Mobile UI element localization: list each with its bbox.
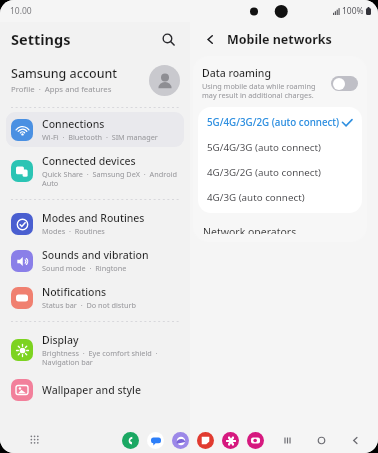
button[interactable]: 4G/3G/2G (auto connect) bbox=[198, 160, 362, 185]
staticText: 10.00 bbox=[10, 5, 32, 17]
button[interactable]: Data roaming toggle bbox=[331, 76, 358, 91]
staticText: Network operators bbox=[203, 225, 297, 234]
button[interactable]: Sounds and vibration bbox=[6, 243, 184, 278]
staticText: Sound mode · Ringtone bbox=[42, 263, 127, 273]
staticText: Notifications bbox=[42, 285, 107, 299]
staticText: 5G/4G/3G (auto connect) bbox=[207, 141, 353, 154]
staticText: Quick Share · Samsung DeX · Android Auto bbox=[42, 169, 178, 188]
button[interactable]: 5G/4G/3G/2G (auto connect) bbox=[198, 110, 362, 135]
button[interactable]: Connected devices bbox=[6, 149, 184, 193]
staticText: Wallpaper and style bbox=[42, 383, 141, 397]
button[interactable]: Display bbox=[6, 328, 184, 372]
button[interactable]: Back bbox=[200, 29, 220, 49]
staticText: Data roaming bbox=[202, 66, 271, 80]
staticText: Samsung account bbox=[11, 65, 118, 82]
staticText: Mobile networks bbox=[227, 31, 332, 48]
button[interactable]: Internet bbox=[172, 432, 189, 449]
staticText: Connections bbox=[42, 117, 105, 131]
button[interactable]: Gallery bbox=[222, 432, 239, 449]
staticText: Connected devices bbox=[42, 154, 136, 168]
staticText: 4G/3G/2G (auto connect) bbox=[207, 166, 353, 179]
staticText: 100% bbox=[342, 5, 364, 17]
button[interactable]: Wallpaper and style bbox=[6, 374, 184, 406]
button[interactable]: Data roaming bbox=[193, 56, 367, 107]
staticText: Status bar · Do not disturb bbox=[42, 300, 137, 310]
staticText: Sounds and vibration bbox=[42, 248, 149, 262]
staticText: Settings bbox=[11, 29, 71, 49]
staticText: 5G/4G/3G/2G (auto connect) bbox=[207, 116, 341, 129]
button[interactable]: Apps bbox=[26, 431, 44, 449]
staticText: Display bbox=[42, 333, 79, 347]
staticText: Using mobile data while roaming may resu… bbox=[202, 81, 325, 101]
staticText: Brightness · Eye comfort shield · Naviga… bbox=[42, 348, 178, 367]
button[interactable]: Home bbox=[310, 429, 332, 451]
button[interactable]: Recents bbox=[276, 429, 298, 451]
button[interactable]: Phone bbox=[122, 432, 139, 449]
button[interactable]: Notes bbox=[197, 432, 214, 449]
staticText: Wi-Fi · Bluetooth · SIM manager bbox=[42, 132, 158, 142]
staticText: Modes and Routines bbox=[42, 211, 145, 225]
button[interactable]: Modes and Routines bbox=[6, 206, 184, 241]
button[interactable]: Network operators bbox=[193, 219, 367, 242]
staticText: Modes · Routines bbox=[42, 226, 105, 236]
button[interactable]: Back bbox=[344, 429, 366, 451]
staticText: 4G/3G (auto connect) bbox=[207, 191, 353, 204]
staticText: Profile · Apps and features bbox=[11, 84, 112, 95]
button[interactable]: Notifications bbox=[6, 280, 184, 315]
button[interactable]: Messages bbox=[147, 432, 164, 449]
button[interactable]: 5G/4G/3G (auto connect) bbox=[198, 135, 362, 160]
button[interactable]: 4G/3G (auto connect) bbox=[198, 185, 362, 210]
button[interactable]: Samsung account bbox=[0, 56, 190, 104]
button[interactable]: Search bbox=[156, 27, 180, 51]
button[interactable]: Connections bbox=[6, 112, 184, 147]
button[interactable]: Camera bbox=[247, 432, 264, 449]
